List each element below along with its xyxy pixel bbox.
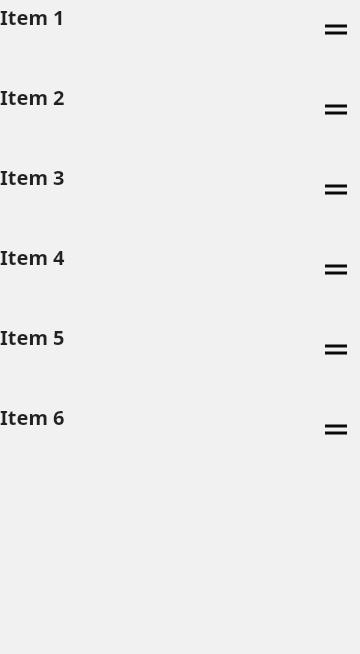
staticText: Item 1 [0,4,65,31]
button[interactable]: Item 3 [0,160,360,240]
button[interactable]: Item 6 [0,400,360,480]
staticText: Item 4 [0,244,65,271]
button[interactable]: Item 4 [0,240,360,320]
staticText: Item 3 [0,164,65,191]
button[interactable]: Reorder Item 1 [325,24,347,35]
staticText: Item 2 [0,84,65,111]
button[interactable]: Item 5 [0,320,360,400]
button[interactable]: Reorder Item 5 [325,344,347,355]
button[interactable]: Reorder Item 4 [325,264,347,275]
button[interactable]: Reorder Item 3 [325,184,347,195]
staticText: Item 6 [0,404,65,431]
button[interactable]: Item 2 [0,80,360,160]
staticText: Item 5 [0,324,65,351]
button[interactable]: Reorder Item 2 [325,104,347,115]
button[interactable]: Reorder Item 6 [325,424,347,435]
button[interactable]: Item 1 [0,0,360,80]
